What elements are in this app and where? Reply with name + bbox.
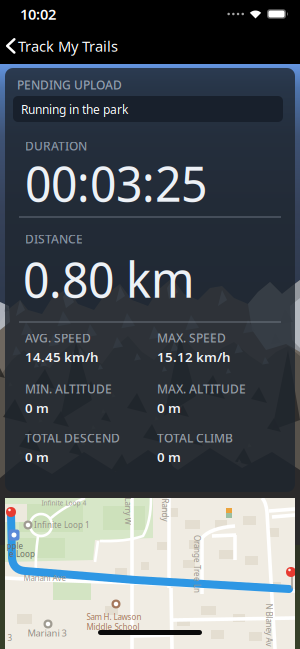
staticText: 0 m: [25, 448, 49, 466]
staticText: PENDING UPLOAD: [17, 77, 122, 93]
staticText: Infinite Loop 4: [41, 499, 86, 507]
staticText: DISTANCE: [25, 231, 83, 247]
staticText: Orange Tree Ln: [168, 559, 226, 569]
staticText: DURATION: [25, 138, 87, 154]
staticText: 10:02: [20, 4, 56, 24]
staticText: Randy: [153, 505, 176, 515]
staticText: pple: [6, 541, 23, 551]
button[interactable]: Running in the park: [13, 96, 283, 122]
staticText: 0 m: [25, 399, 49, 417]
button[interactable]: Back: [0, 36, 118, 56]
staticText: Running in the park: [21, 101, 128, 117]
staticText: TOTAL CLIMB: [157, 430, 233, 446]
staticText: Mariani 3: [27, 627, 66, 639]
staticText: e Loop: [9, 549, 35, 559]
staticText: N Blaney Av: [247, 620, 290, 630]
staticText: Sam H. Lawson: [86, 612, 141, 622]
staticText: 3: [7, 633, 12, 643]
staticText: MAX. ALTITUDE: [157, 381, 246, 397]
staticText: Larry W: [114, 506, 141, 516]
staticText: 0 m: [157, 448, 181, 466]
staticText: 15.12 km/h: [157, 348, 231, 366]
staticText: 00:03:25: [25, 149, 207, 216]
staticText: MAX. SPEED: [157, 330, 226, 346]
staticText: 0 m: [157, 399, 181, 417]
staticText: TOTAL DESCEND: [25, 430, 120, 446]
staticText: Track My Trails: [18, 36, 118, 56]
staticText: MIN. ALTITUDE: [25, 381, 112, 397]
staticText: 14.45 km/h: [25, 348, 99, 366]
staticText: Infinite Loop 1: [34, 520, 90, 530]
staticText: Middle School: [86, 622, 139, 632]
staticText: AVG. SPEED: [25, 330, 91, 346]
staticText: Mariani Ave: [23, 573, 66, 583]
staticText: 0.80 km: [23, 245, 195, 312]
